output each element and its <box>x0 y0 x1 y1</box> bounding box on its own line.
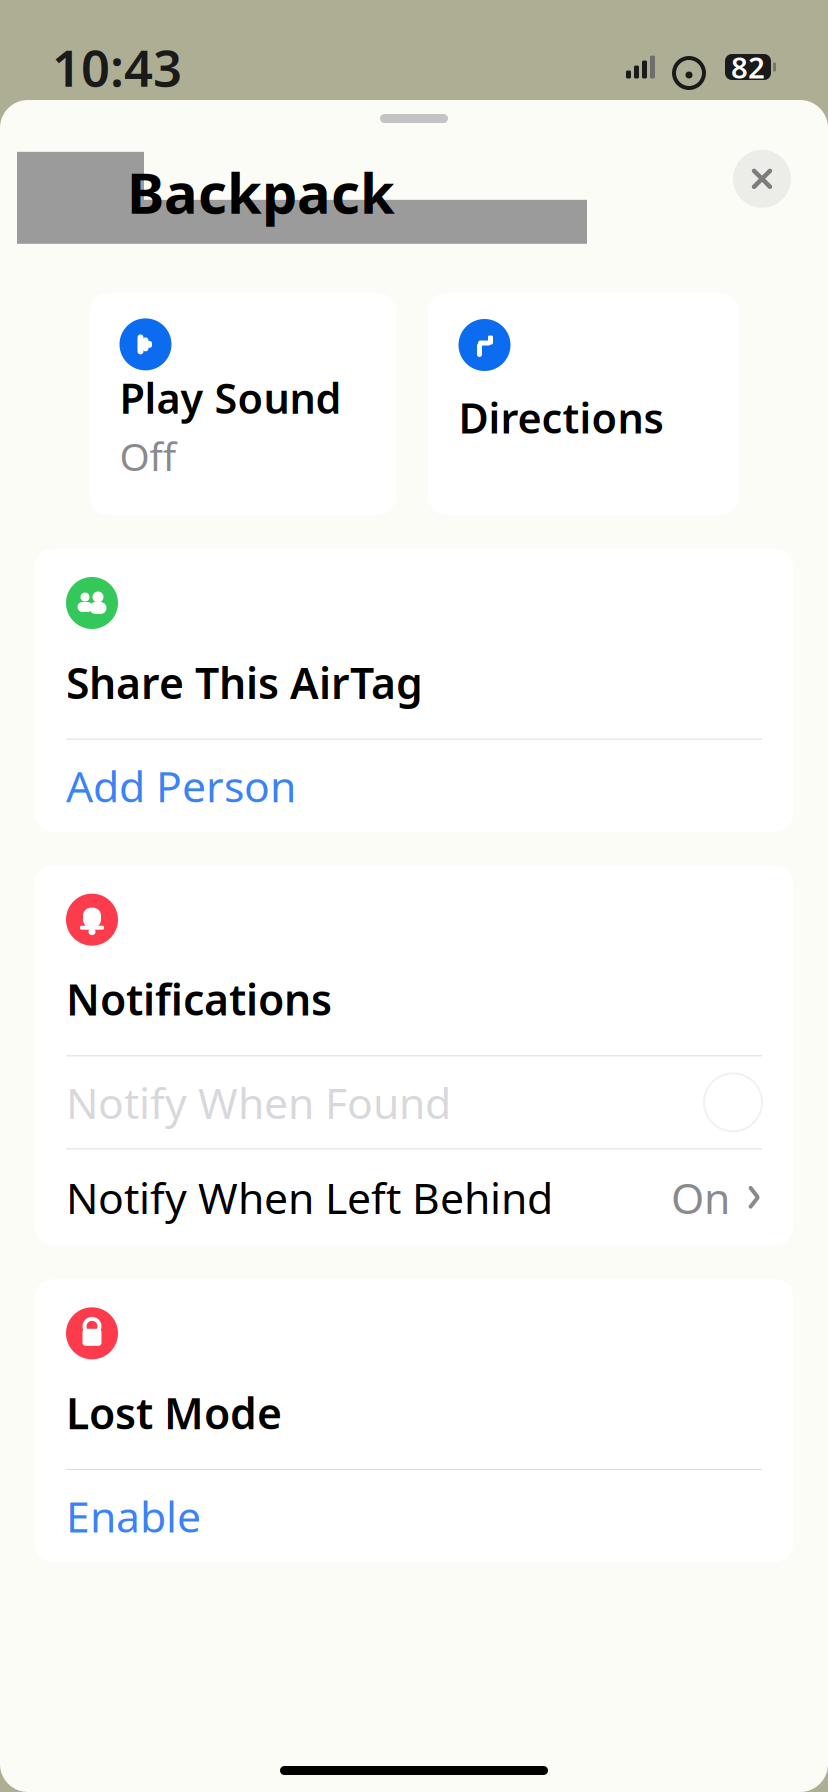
staticText: Notify When Found <box>66 1074 451 1131</box>
button[interactable]: Notify When Left Behind <box>35 1149 793 1245</box>
staticText: Lost Mode <box>66 1384 282 1441</box>
staticText: Enable <box>66 1488 201 1544</box>
staticText: Notifications <box>66 971 332 1027</box>
staticText: Notify When Left Behind <box>66 1169 553 1226</box>
staticText: Play Sound <box>119 370 341 425</box>
staticText: Directions <box>458 390 663 445</box>
button[interactable]: Enable <box>35 1470 793 1562</box>
staticText: Backpack <box>127 155 395 229</box>
staticText: 82 <box>731 47 765 86</box>
staticText: 10:43 <box>52 33 182 101</box>
button[interactable]: Add Person <box>35 740 793 832</box>
button[interactable]: Directions <box>428 293 738 515</box>
staticText: Share This AirTag <box>66 654 423 711</box>
button[interactable]: Notify When Found <box>35 1056 793 1148</box>
button[interactable]: Play Sound <box>89 293 395 515</box>
staticText: Off <box>119 430 176 482</box>
button[interactable]: Close <box>733 150 791 208</box>
staticText: Add Person <box>66 757 296 814</box>
staticText: On <box>671 1169 730 1226</box>
